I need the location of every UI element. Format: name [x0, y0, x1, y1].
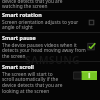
staticText: The screen will start to scroll automati… — [2, 71, 63, 95]
staticText: Smart rotation — [2, 11, 42, 18]
button[interactable]: device detects that you are watching the… — [0, 0, 100, 10]
staticText: Smart pause — [2, 34, 36, 41]
button[interactable]: Smart scroll switch, on — [73, 71, 97, 80]
button[interactable]: Smart rotation checkbox, off — [88, 19, 95, 26]
button[interactable]: Smart pause — [0, 33, 100, 61]
staticText: Screen orientation adjusts to your angle… — [2, 19, 79, 31]
staticText: The device pauses videos when it detects… — [2, 42, 86, 60]
button[interactable]: Smart scroll — [0, 62, 100, 100]
button[interactable]: Smart rotation — [0, 11, 100, 32]
staticText: Smart scroll — [2, 63, 34, 70]
staticText: SAMSUNG — [25, 53, 80, 67]
staticText: device detects that you are watching the… — [2, 0, 63, 10]
button[interactable]: Smart pause checkbox, on — [87, 42, 96, 51]
